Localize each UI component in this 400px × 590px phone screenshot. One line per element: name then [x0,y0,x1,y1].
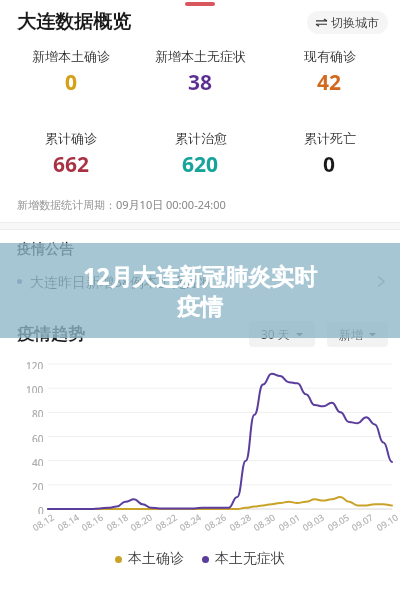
staticText: 08.12 [30,511,56,533]
staticText: 60 [32,432,44,442]
staticText: 累计死亡 [304,130,356,146]
staticText: 大连数据概览 [17,10,131,34]
staticText: 08.16 [79,511,105,533]
staticText: 疫情公告 [17,241,73,259]
staticText: 12月大连新冠肺炎实时 [83,260,317,291]
button[interactable]: 本土无症状 [202,550,285,568]
staticText: 本土确诊 [128,550,184,568]
staticText: 120 [26,359,44,369]
button[interactable]: 切换城市 [307,11,388,34]
staticText: 09.10 [374,511,400,533]
staticText: 40 [32,456,44,466]
staticText: 42 [317,68,342,97]
staticText: 09.01 [276,511,302,533]
staticText: 疫情 [177,293,223,322]
staticText: 09.05 [325,511,351,533]
button[interactable]: 累计确诊 [6,130,136,179]
button[interactable]: 累计死亡 [265,130,394,179]
staticText: 620 [182,150,219,179]
button[interactable]: 新增本土确诊 [6,48,136,97]
staticText: 100 [26,383,44,393]
staticText: 09.03 [300,511,326,533]
staticText: 38 [188,68,213,97]
staticText: 本土无症状 [215,550,285,568]
staticText: 累计治愈 [175,130,227,146]
staticText: 0 [323,150,336,179]
staticText: 08.18 [104,511,130,533]
staticText: 新增 [339,327,363,342]
staticText: 09月10日 00:00-24:00 [116,197,226,212]
button[interactable]: 新增 [327,322,388,347]
button[interactable]: 新增本土无症状 [136,48,265,97]
staticText: 08.28 [227,511,253,533]
staticText: 新增本土确诊 [32,48,110,64]
staticText: 08.24 [177,511,203,533]
staticText: 80 [32,407,44,417]
staticText: 08.14 [55,511,81,533]
staticText: 大连昨日新增38例本土无症状 [30,272,215,291]
staticText: 09.07 [349,511,375,533]
staticText: 累计确诊 [45,130,97,146]
staticText: 0 [65,68,78,97]
button[interactable]: 累计治愈 [136,130,265,179]
staticText: 08.20 [128,511,154,533]
button[interactable]: 大连昨日新增38例本土无症状 [0,272,400,291]
staticText: 0 [38,504,44,514]
staticText: 662 [53,150,90,179]
staticText: 现有确诊 [304,48,356,64]
button[interactable]: 30 天 [249,321,315,347]
staticText: 新增本土无症状 [155,48,246,64]
staticText: 疫情趋势 [17,324,85,345]
staticText: 30 天 [261,326,290,342]
staticText: 08.30 [251,511,277,533]
staticText: 08.26 [202,511,228,533]
staticText: 新增数据统计周期： [17,198,116,212]
staticText: 08.22 [153,511,179,533]
staticText: 20 [32,480,44,490]
button[interactable]: 现有确诊 [265,48,394,97]
button[interactable]: 本土确诊 [115,550,184,568]
staticText: 切换城市 [331,15,379,30]
